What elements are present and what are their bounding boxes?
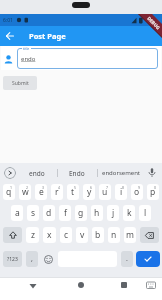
staticText: k [127,207,132,219]
button[interactable]: o [131,184,143,200]
button[interactable] [121,282,127,288]
button[interactable]: q [3,184,15,200]
staticText: a [15,207,20,219]
staticText: title [23,46,30,51]
staticText: l [144,207,147,219]
button[interactable]: g [75,205,87,221]
button[interactable]: Endo [58,163,96,183]
button[interactable] [3,227,22,243]
button[interactable] [29,283,37,289]
staticText: e [39,186,44,198]
button[interactable]: n [108,227,120,243]
button[interactable]: Submit [3,76,37,90]
button[interactable]: l [139,205,151,221]
staticText: b [95,229,101,241]
button[interactable]: w [19,184,31,200]
button[interactable]: v [76,227,88,243]
button[interactable] [4,167,16,179]
button[interactable] [146,281,156,289]
staticText: w [22,186,29,198]
button[interactable]: y [83,184,95,200]
button[interactable]: , [26,251,38,267]
staticText: p [150,186,156,198]
staticText: 4 [58,185,61,190]
button[interactable]: e [35,184,47,200]
button[interactable]: h [91,205,103,221]
button[interactable]: endo [18,163,56,183]
button[interactable]: t [67,184,79,200]
staticText: DEBUG [146,15,162,31]
button[interactable]: endo [17,48,158,69]
staticText: y [87,186,92,198]
staticText: 9 [138,185,141,190]
staticText: f [64,207,67,219]
button[interactable]: s [27,205,39,221]
button[interactable]: z [26,227,39,243]
button[interactable]: c [60,227,72,243]
staticText: d [46,207,52,219]
staticText: 7 [106,185,109,190]
staticText: j [112,207,115,219]
button[interactable]: d [43,205,55,221]
button[interactable]: f [59,205,71,221]
button[interactable]: ?123 [3,251,22,267]
staticText: v [80,229,85,241]
button[interactable]: p [147,184,159,200]
button[interactable]: . [121,251,133,267]
staticText: endo [29,169,45,178]
button[interactable]: r [51,184,63,200]
button[interactable] [140,227,159,243]
staticText: . [126,254,128,264]
staticText: c [64,229,69,241]
button[interactable] [6,26,22,46]
staticText: q [6,186,12,198]
button[interactable]: x [43,227,56,243]
staticText: 5 [74,185,77,190]
button[interactable] [136,251,160,267]
button[interactable]: endorsement [98,163,144,183]
staticText: 6 [90,185,93,190]
staticText: 8 [122,185,125,190]
staticText: m [126,229,134,241]
button[interactable]: i [115,184,127,200]
staticText: endorsement [102,169,141,177]
button[interactable]: u [99,184,111,200]
button[interactable]: k [123,205,135,221]
staticText: s [31,207,36,219]
staticText: 3 [42,185,45,190]
button[interactable]: b [92,227,104,243]
staticText: 0 [154,185,157,190]
staticText: Endo [69,169,85,178]
staticText: z [31,229,35,241]
button[interactable] [148,168,156,179]
staticText: Submit [12,80,29,87]
staticText: o [134,186,140,198]
staticText: 6:01 [3,17,13,24]
staticText: Post Page [29,31,66,41]
staticText: g [78,207,84,219]
staticText: u [102,186,108,198]
staticText: endo [21,55,36,63]
staticText: r [55,186,59,198]
button[interactable]: j [107,205,119,221]
staticText: n [111,229,117,241]
button[interactable]: a [11,205,23,221]
staticText: 1 [10,185,13,190]
staticText: h [94,207,100,219]
staticText: t [71,186,75,198]
button[interactable] [44,255,53,264]
button[interactable]: m [124,227,136,243]
staticText: 2 [26,185,29,190]
staticText: ?123 [7,256,18,263]
button[interactable] [78,282,84,288]
staticText: , [31,254,33,264]
staticText: x [47,229,52,241]
staticText: i [120,186,123,198]
